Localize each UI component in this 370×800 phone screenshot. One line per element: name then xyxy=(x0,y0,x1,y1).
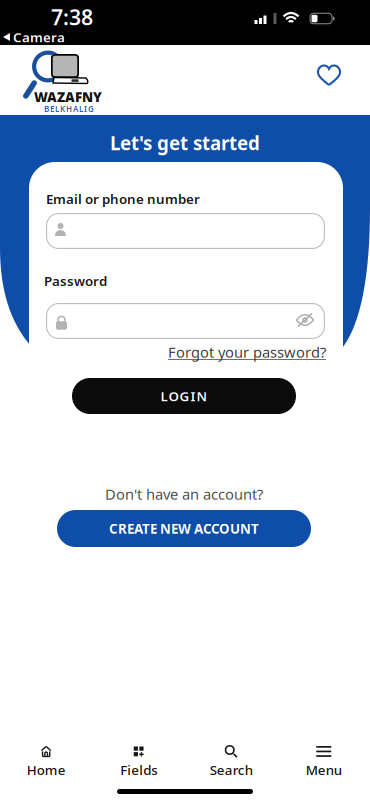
staticText: Home xyxy=(27,761,66,779)
button[interactable]: Email or phone number xyxy=(46,213,325,249)
staticText: Camera xyxy=(13,28,65,46)
staticText: B E L K H A L I G xyxy=(44,104,94,114)
button[interactable]: Search xyxy=(185,746,277,779)
staticText: Fields xyxy=(120,761,157,779)
staticText: L O G I N xyxy=(160,387,207,405)
button[interactable]: Back to Camera xyxy=(3,28,65,46)
staticText: Don't have an account? xyxy=(105,484,263,504)
button[interactable]: L O G I N xyxy=(72,378,296,414)
button[interactable]: Fields xyxy=(92,746,185,779)
button[interactable]: Favorites xyxy=(317,64,341,86)
staticText: Search xyxy=(210,761,253,779)
staticText: 7:38 xyxy=(51,3,93,31)
staticText: CREATE NEW ACCOUNT xyxy=(109,520,259,537)
staticText: Password xyxy=(44,272,107,290)
button[interactable]: Show password xyxy=(296,313,313,327)
button[interactable]: CREATE NEW ACCOUNT xyxy=(57,510,311,547)
staticText: Menu xyxy=(306,761,342,779)
staticText: Forgot your password? xyxy=(168,342,326,362)
button[interactable]: Home xyxy=(0,746,92,779)
button[interactable]: Forgot your password? xyxy=(168,342,326,362)
staticText: Let's get started xyxy=(110,131,260,155)
button[interactable]: Menu xyxy=(277,746,370,779)
button[interactable]: Password xyxy=(46,303,325,339)
staticText: WAZAFNY xyxy=(34,88,102,106)
staticText: Email or phone number xyxy=(46,190,200,208)
